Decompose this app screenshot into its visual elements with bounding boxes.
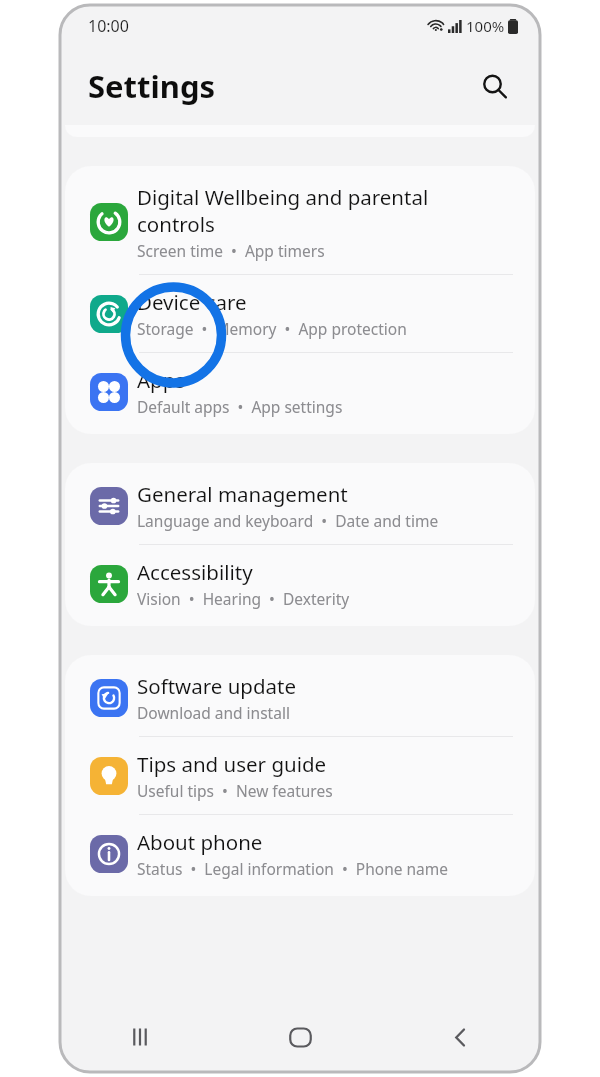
staticText: Device care [137,288,247,316]
button[interactable]: Accessibility [65,545,535,622]
staticText: Default apps • App settings [137,396,343,417]
staticText: Apps [137,366,186,394]
staticText: General management [137,480,348,508]
staticText: Settings [88,65,216,107]
staticText: Download and install [137,702,290,723]
button[interactable]: Digital Wellbeing and parental controls [65,170,535,275]
staticText: Vision • Hearing • Dexterity [137,588,350,609]
staticText: Language and keyboard • Date and time [137,510,439,531]
button[interactable]: About phone [65,815,535,892]
staticText: Storage • Memory • App protection [137,318,407,339]
button[interactable]: General management [65,467,535,545]
staticText: Digital Wellbeing and parental controls [137,183,429,238]
button[interactable]: Search [472,64,516,108]
staticText: Tips and user guide [137,750,327,778]
staticText: Accessibility [137,558,253,586]
staticText: Useful tips • New features [137,780,333,801]
button[interactable]: Recents [60,1002,220,1072]
button[interactable]: Home [220,1002,380,1072]
staticText: Software update [137,672,297,700]
button[interactable]: Back [380,1002,540,1072]
button[interactable]: Software update [65,659,535,737]
staticText: 100% [466,16,505,36]
staticText: Status • Legal information • Phone name [137,858,449,879]
staticText: 10:00 [88,15,129,37]
button[interactable]: Tips and user guide [65,737,535,815]
staticText: Screen time • App timers [137,240,325,261]
staticText: About phone [137,828,263,856]
button[interactable]: Device care [65,275,535,353]
button[interactable]: Apps [65,353,535,430]
